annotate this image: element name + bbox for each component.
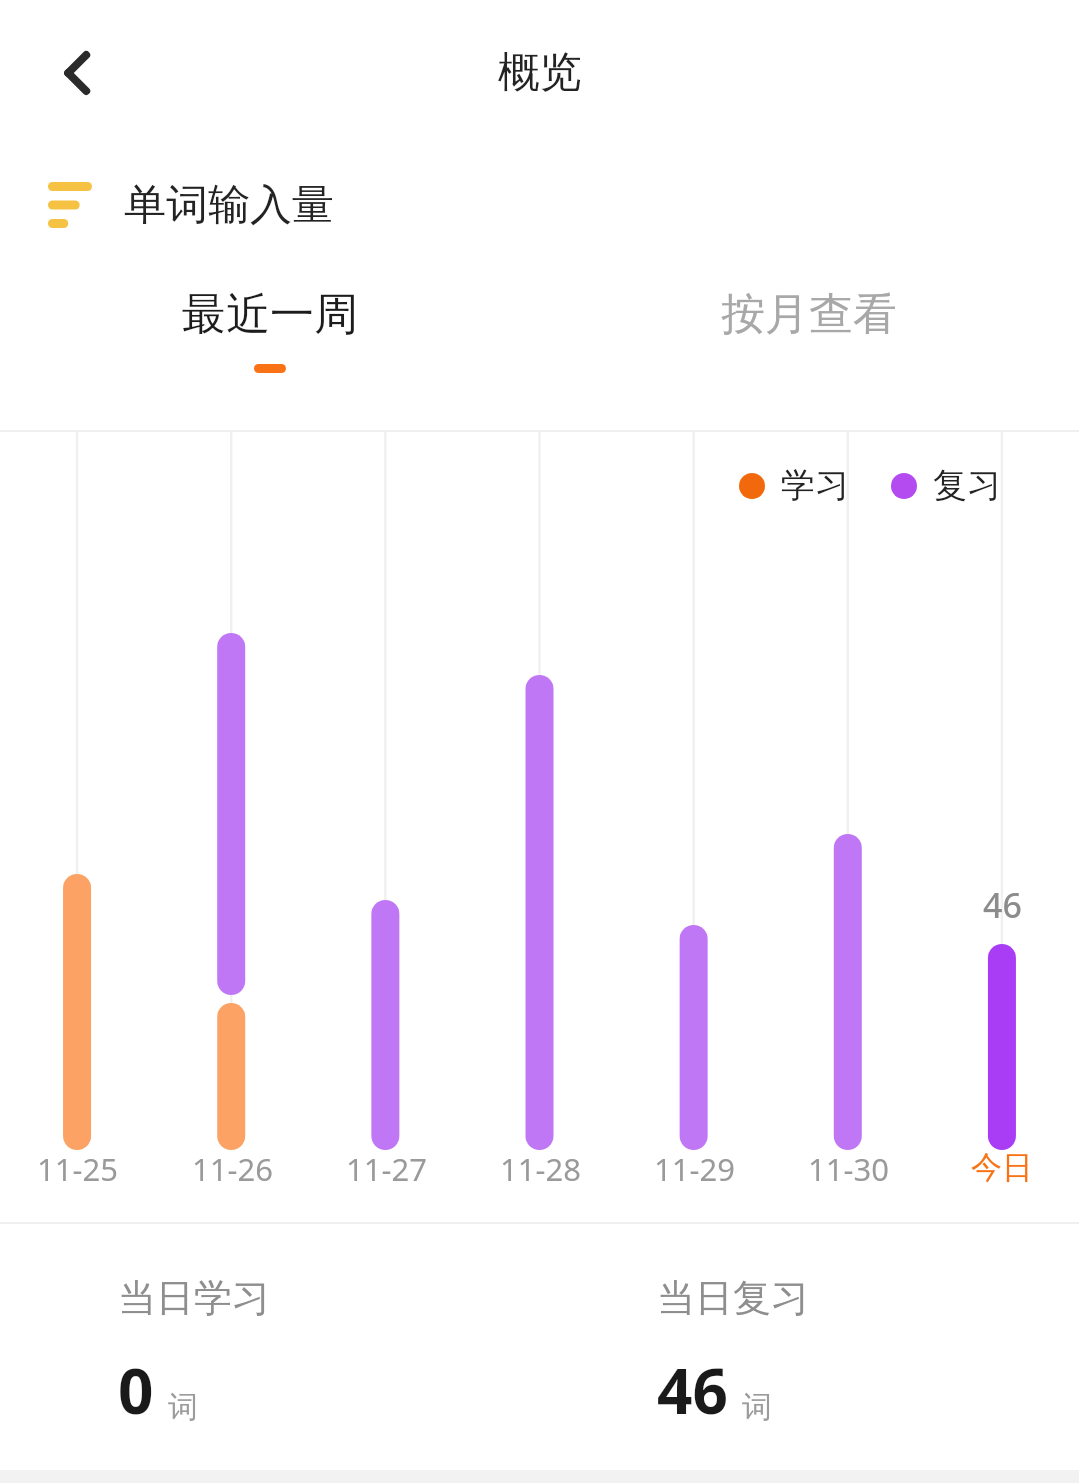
staticText: 单词输入量 — [124, 179, 334, 232]
button[interactable]: Back — [24, 18, 134, 128]
staticText: 11-30 — [808, 1148, 889, 1190]
staticText: 最近一周 — [182, 287, 358, 342]
staticText: 11-29 — [654, 1148, 735, 1190]
staticText: 词 — [168, 1388, 198, 1426]
staticText: 当日学习 — [118, 1274, 270, 1322]
staticText: 词 — [742, 1388, 772, 1426]
staticText: 11-25 — [37, 1148, 118, 1190]
button[interactable]: 按月查看 — [539, 265, 1079, 373]
button[interactable]: 当日学习 — [0, 1224, 539, 1432]
staticText: 46 — [657, 1348, 728, 1432]
button[interactable]: 最近一周 — [0, 265, 539, 373]
staticText: 概览 — [498, 46, 582, 99]
staticText: 0 — [118, 1348, 154, 1432]
button[interactable]: 当日复习 — [539, 1224, 1079, 1432]
staticText: 11-26 — [192, 1148, 273, 1190]
staticText: 学习 — [781, 464, 849, 507]
staticText: 46 — [983, 882, 1022, 928]
staticText: 今日 — [971, 1148, 1033, 1187]
staticText: 按月查看 — [721, 287, 897, 342]
staticText: 复习 — [933, 464, 1001, 507]
staticText: 当日复习 — [657, 1274, 809, 1322]
staticText: 11-27 — [346, 1148, 427, 1190]
staticText: 11-28 — [500, 1148, 581, 1190]
